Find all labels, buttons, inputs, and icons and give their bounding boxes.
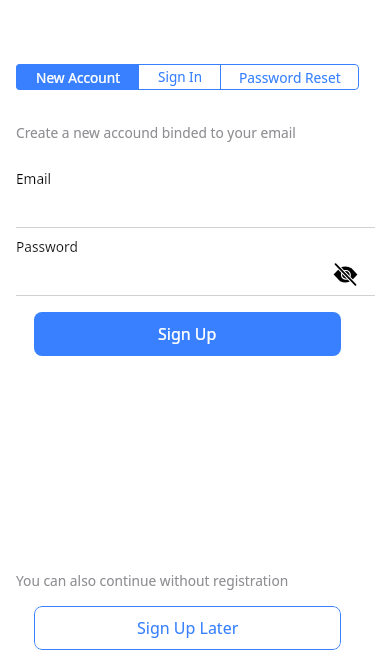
button[interactable]: Show password xyxy=(330,259,361,290)
button[interactable]: Password Reset xyxy=(221,64,359,90)
button[interactable]: Password xyxy=(0,232,375,295)
staticText: Create a new accound binded to your emai… xyxy=(16,123,296,142)
staticText: Sign In xyxy=(158,68,202,86)
staticText: Password Reset xyxy=(239,68,341,87)
staticText: Password xyxy=(16,237,78,256)
button[interactable]: Sign Up xyxy=(34,312,341,356)
staticText: New Account xyxy=(36,68,121,87)
button[interactable]: New Account xyxy=(16,64,138,90)
staticText: Sign Up Later xyxy=(137,617,239,639)
button[interactable]: Sign Up Later xyxy=(34,606,341,650)
button[interactable]: Email xyxy=(0,164,375,227)
staticText: Sign Up xyxy=(158,323,217,345)
staticText: Email xyxy=(16,169,52,188)
staticText: You can also continue without registrati… xyxy=(16,571,289,590)
button[interactable]: Sign In xyxy=(139,64,220,90)
